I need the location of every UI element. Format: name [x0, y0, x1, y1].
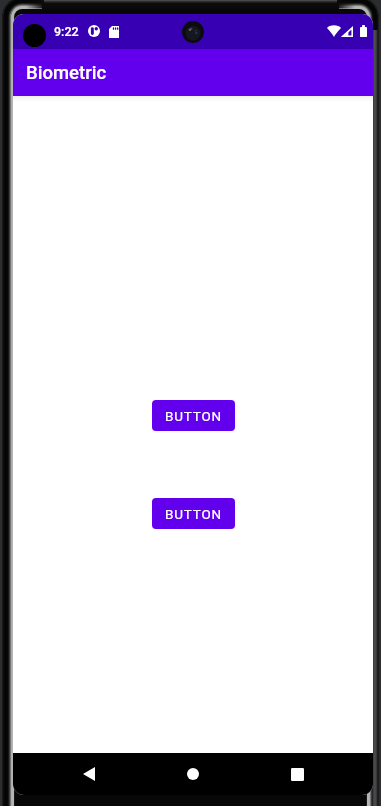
staticText: BUTTON: [165, 408, 222, 424]
button[interactable]: Recent apps: [273, 753, 321, 795]
button[interactable]: BUTTON: [152, 498, 235, 529]
button[interactable]: BUTTON: [152, 400, 235, 431]
staticText: Biometric: [26, 62, 107, 84]
staticText: 9:22: [54, 24, 79, 39]
staticText: BUTTON: [165, 506, 222, 522]
button[interactable]: Home: [169, 753, 217, 795]
button[interactable]: Back: [65, 753, 113, 795]
